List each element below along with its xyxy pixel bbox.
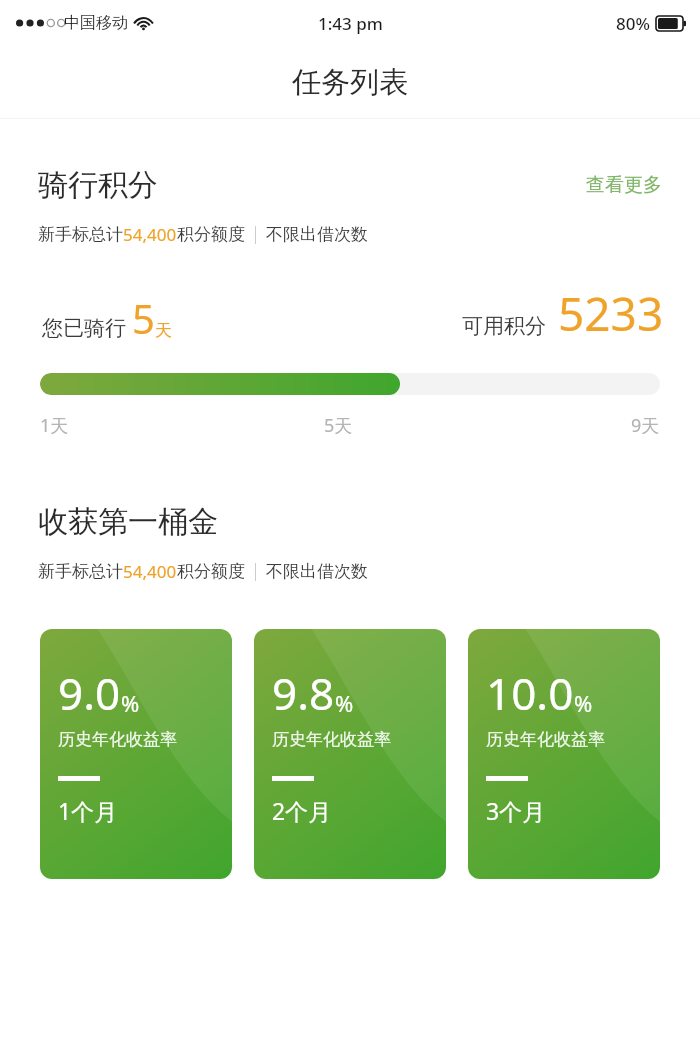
button[interactable]: 10.0 [468,629,660,879]
staticText: 您已骑行 [42,315,126,341]
staticText: 可用积分 [462,313,546,339]
staticText: 不限出借次数 [266,224,368,245]
staticText: 9天 [631,413,660,438]
staticText: % [574,688,593,718]
staticText: 1天 [40,413,69,438]
staticText: 骑行积分 [38,166,158,204]
staticText: 收获第一桶金 [38,503,218,541]
staticText: 历史年化收益率 [486,729,605,750]
staticText: 5233 [558,282,664,345]
staticText: 任务列表 [292,64,408,101]
staticText: 查看更多 [586,173,662,197]
staticText: % [335,688,354,718]
staticText: 80% [616,12,650,35]
staticText: 5 [132,291,155,345]
button[interactable]: 9.0 [40,629,232,879]
staticText: 1:43 pm [318,12,383,35]
staticText: 5天 [324,413,353,438]
staticText: 新手标总计 [38,224,123,245]
staticText: 9.8 [272,663,335,723]
staticText: 54,400 [123,560,177,583]
staticText: 54,400 [123,223,177,246]
button[interactable]: 查看更多 [570,165,700,205]
staticText: 历史年化收益率 [272,729,391,750]
staticText: 10.0 [486,663,574,723]
staticText: 不限出借次数 [266,561,368,582]
staticText: % [121,688,140,718]
staticText: 积分额度 [177,224,245,245]
staticText: 3个月 [486,795,546,826]
staticText: 积分额度 [177,561,245,582]
staticText: 新手标总计 [38,561,123,582]
staticText: 1个月 [58,795,118,826]
button[interactable]: 9.8 [254,629,446,879]
staticText: 9.0 [58,663,121,723]
staticText: 天 [155,320,172,341]
staticText: 中国移动 [64,13,128,33]
staticText: 历史年化收益率 [58,729,177,750]
staticText: 2个月 [272,795,332,826]
